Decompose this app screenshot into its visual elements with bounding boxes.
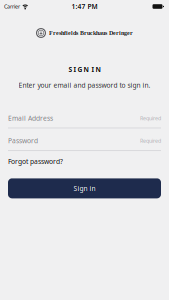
staticText: S I G N I N xyxy=(68,65,100,74)
staticText: Password xyxy=(8,136,38,145)
button[interactable]: Sign in xyxy=(8,178,161,198)
staticText: Carrier xyxy=(4,3,20,10)
staticText: Freshfields Bruckhaus Deringer xyxy=(49,30,133,36)
staticText: Enter your email and password to sign in… xyxy=(18,81,150,90)
staticText: Required xyxy=(140,137,161,144)
button[interactable]: Password text field xyxy=(8,136,161,151)
staticText: Email Address xyxy=(8,114,53,123)
staticText: 1:47 PM xyxy=(71,2,97,11)
staticText: Sign in xyxy=(73,184,95,193)
button[interactable]: Forgot password? xyxy=(8,157,63,166)
button[interactable]: Email Address text field xyxy=(8,114,161,128)
staticText: Required xyxy=(140,115,161,122)
staticText: Forgot password? xyxy=(8,157,63,166)
